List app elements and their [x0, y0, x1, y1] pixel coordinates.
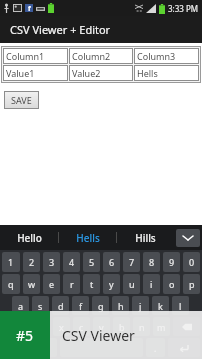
staticText: v	[99, 321, 104, 333]
button[interactable]: Value1	[3, 65, 68, 81]
staticText: #5	[16, 326, 34, 345]
staticText: q	[8, 278, 14, 290]
button[interactable]: a	[12, 296, 29, 315]
button[interactable]: 2	[23, 252, 40, 272]
staticText: l	[179, 300, 182, 312]
staticText: i	[150, 278, 153, 290]
staticText: Hells	[137, 67, 158, 79]
button[interactable]: Hells	[59, 225, 116, 250]
staticText: 1	[8, 256, 14, 268]
button[interactable]: Hello	[0, 225, 58, 250]
staticText: CSV Viewer	[62, 326, 135, 345]
button[interactable]: 7	[123, 252, 140, 272]
staticText: t	[90, 278, 94, 290]
staticText: f	[79, 300, 83, 312]
staticText: Hills	[135, 231, 156, 245]
button[interactable]: Expand suggestions	[176, 229, 200, 247]
button[interactable]: Column3	[134, 48, 199, 64]
staticText: x	[59, 321, 64, 333]
button[interactable]: r	[63, 274, 80, 294]
button[interactable]: 8	[143, 252, 160, 272]
button[interactable]: m	[153, 317, 170, 336]
staticText: m	[157, 321, 166, 333]
staticText: 0	[189, 256, 195, 268]
staticText: n	[139, 321, 145, 333]
staticText: y	[109, 278, 114, 290]
button[interactable]: s	[32, 296, 49, 315]
button[interactable]: u	[123, 274, 140, 294]
staticText: 8	[149, 256, 155, 268]
button[interactable]: ?123	[2, 338, 35, 357]
button[interactable]: l	[172, 296, 189, 315]
button[interactable]: j	[132, 296, 149, 315]
button[interactable]: i	[143, 274, 160, 294]
staticText: w	[28, 278, 36, 290]
button[interactable]: 9	[163, 252, 180, 272]
button[interactable]: ,	[38, 338, 57, 357]
button[interactable]: v	[93, 317, 110, 336]
staticText: CSV Viewer + Editor	[10, 22, 111, 37]
button[interactable]: x	[53, 317, 70, 336]
staticText: e	[49, 278, 55, 290]
staticText: 3	[49, 256, 55, 268]
staticText: h	[118, 300, 124, 312]
button[interactable]: 4	[63, 252, 80, 272]
button[interactable]: y	[103, 274, 120, 294]
button[interactable]: 3	[43, 252, 60, 272]
staticText: p	[189, 278, 195, 290]
button[interactable]: p	[183, 274, 200, 294]
staticText: 4	[69, 256, 75, 268]
button[interactable]	[60, 338, 143, 357]
staticText: u	[129, 278, 135, 290]
staticText: c	[79, 321, 84, 333]
button[interactable]: Shift	[2, 317, 30, 336]
staticText: Hello	[17, 231, 42, 245]
staticText: s	[38, 300, 43, 312]
button[interactable]: g	[92, 296, 109, 315]
button[interactable]: d	[52, 296, 69, 315]
button[interactable]: n	[133, 317, 150, 336]
button[interactable]: f	[72, 296, 89, 315]
button[interactable]: 1	[2, 252, 20, 272]
staticText: 6	[109, 256, 115, 268]
staticText: o	[169, 278, 175, 290]
staticText: 7	[129, 256, 135, 268]
staticText: SAVE	[11, 94, 32, 106]
button[interactable]: 0	[183, 252, 200, 272]
staticText: a	[18, 300, 24, 312]
button[interactable]: h	[112, 296, 129, 315]
staticText: 5	[89, 256, 95, 268]
button[interactable]: SAVE	[4, 91, 39, 109]
staticText: g	[98, 300, 104, 312]
staticText: Hells	[76, 231, 100, 245]
staticText: Value2	[72, 67, 101, 79]
staticText: Column1	[6, 50, 45, 62]
staticText: k	[158, 300, 163, 312]
button[interactable]: Value2	[69, 65, 133, 81]
button[interactable]: Backspace	[173, 317, 200, 336]
staticText: 3:33 PM	[168, 3, 199, 14]
button[interactable]: Hells	[134, 65, 199, 81]
button[interactable]: k	[152, 296, 169, 315]
button[interactable]: b	[113, 317, 130, 336]
button[interactable]: 5	[83, 252, 100, 272]
button[interactable]: 6	[103, 252, 120, 272]
button[interactable]: e	[43, 274, 60, 294]
button[interactable]: t	[83, 274, 100, 294]
button[interactable]: Hills	[117, 225, 174, 250]
button[interactable]: o	[163, 274, 180, 294]
button[interactable]: Column1	[3, 48, 68, 64]
staticText: b	[119, 321, 125, 333]
staticText: r	[70, 278, 74, 290]
button[interactable]: c	[73, 317, 90, 336]
staticText: j	[139, 300, 142, 312]
button[interactable]: Column2	[69, 48, 133, 64]
button[interactable]: q	[2, 274, 20, 294]
button[interactable]: w	[23, 274, 40, 294]
